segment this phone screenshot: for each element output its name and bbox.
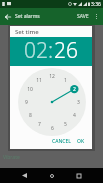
- button[interactable]: More options: [92, 12, 101, 21]
- button[interactable]: OK: [74, 136, 88, 147]
- staticText: 2: [73, 86, 76, 93]
- button[interactable]: SAVE: [75, 10, 91, 23]
- staticText: 6: [51, 125, 54, 132]
- staticText: 11: [36, 77, 42, 84]
- staticText: 9: [25, 99, 28, 106]
- button[interactable]: Home: [44, 168, 59, 183]
- button[interactable]: Back: [17, 168, 32, 183]
- button[interactable]: Back: [3, 12, 13, 22]
- staticText: 02: [24, 36, 48, 65]
- staticText: Vibrate: [3, 154, 20, 161]
- staticText: 26: [54, 36, 78, 65]
- staticText: 7: [38, 121, 41, 128]
- staticText: 10: [27, 86, 33, 93]
- staticText: 3: [77, 99, 80, 106]
- staticText: 4: [73, 112, 76, 119]
- staticText: CANCEL: [52, 138, 71, 145]
- staticText: 1: [64, 77, 67, 84]
- staticText: 12: [49, 73, 55, 80]
- button[interactable]: Recents: [71, 168, 86, 183]
- button[interactable]: CANCEL: [49, 136, 74, 147]
- staticText: Set alarms: [15, 13, 40, 20]
- staticText: 3:36: [91, 1, 101, 8]
- staticText: Set time: [15, 28, 39, 36]
- staticText: :: [48, 36, 54, 65]
- staticText: 8: [29, 112, 32, 119]
- staticText: SAVE: [77, 13, 89, 20]
- staticText: 5: [64, 121, 67, 128]
- staticText: OK: [77, 138, 85, 145]
